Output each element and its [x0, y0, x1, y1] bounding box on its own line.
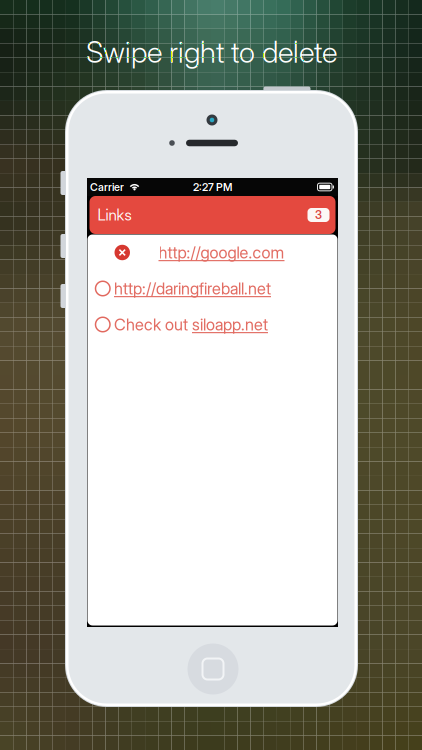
- button[interactable]: http://daringfireball.net: [87, 270, 338, 306]
- staticText: http://daringfireball.net: [114, 279, 271, 298]
- button[interactable]: http://google.com: [87, 234, 338, 270]
- button[interactable]: Check out siloapp.net: [87, 306, 338, 342]
- button[interactable]: 3: [307, 208, 329, 222]
- staticText: http://google.com: [158, 243, 284, 262]
- staticText: Check out siloapp.net: [114, 315, 268, 334]
- staticText: 2:27 PM: [193, 180, 232, 193]
- staticText: 3: [315, 208, 322, 222]
- staticText: Swipe right to delete: [86, 34, 337, 70]
- staticText: Carrier: [90, 180, 124, 193]
- staticText: Links: [97, 206, 131, 224]
